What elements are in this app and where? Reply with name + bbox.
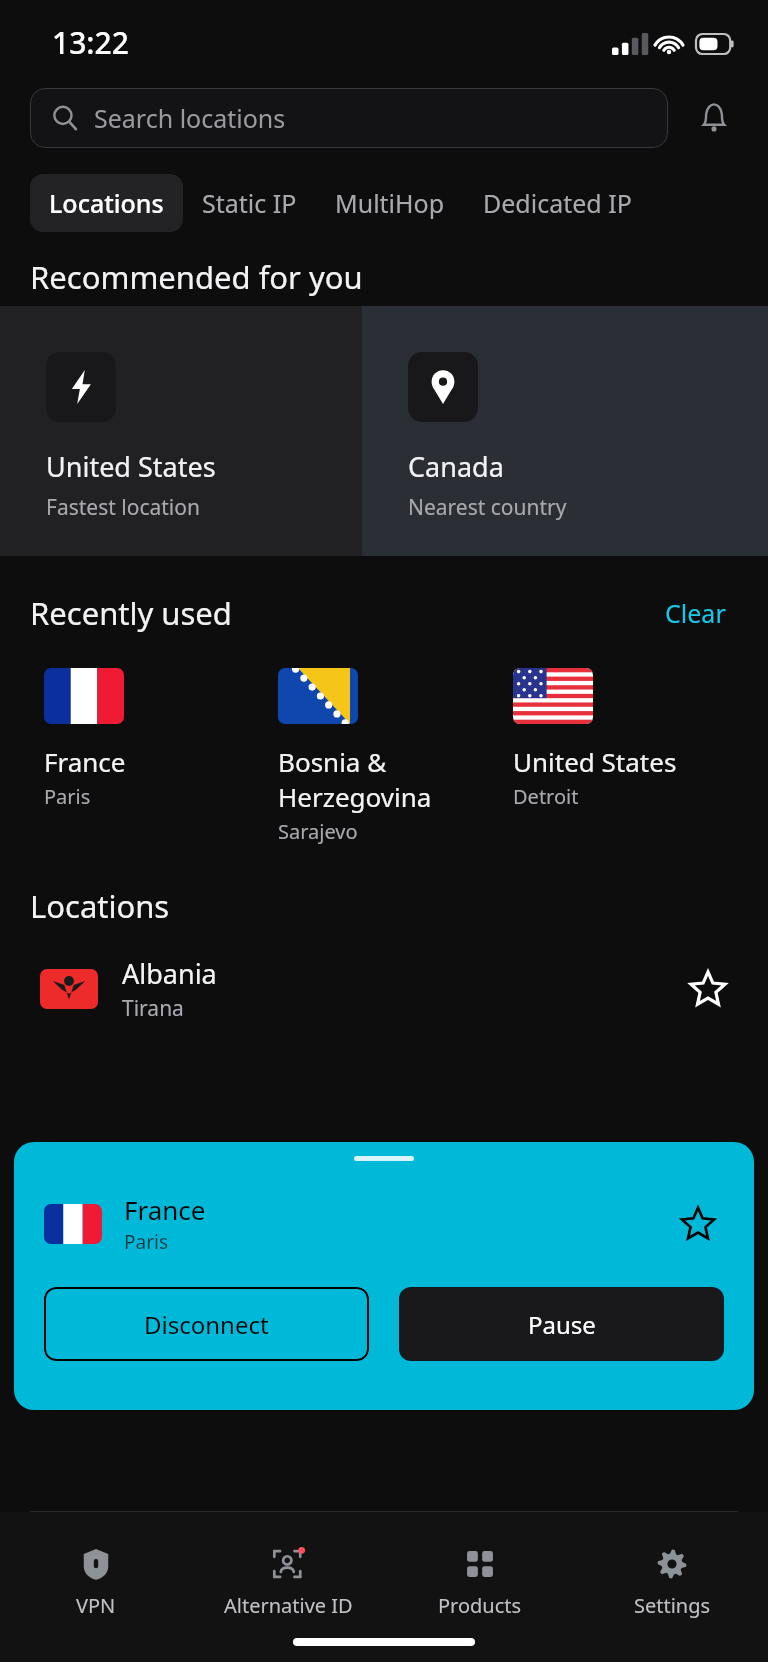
button[interactable]: Favorite (672, 1198, 724, 1250)
staticText: Nearest country (408, 493, 567, 522)
button[interactable]: Clear (657, 588, 734, 638)
button[interactable]: France (14, 1142, 754, 1410)
button[interactable]: United States (0, 306, 362, 556)
staticText: Locations (30, 885, 170, 927)
button[interactable]: Bosnia & Herzegovina (278, 668, 513, 845)
staticText: Static IP (202, 186, 297, 220)
staticText: MultiHop (335, 186, 445, 220)
button[interactable]: Pause (399, 1287, 724, 1361)
staticText: Sarajevo (278, 818, 358, 845)
staticText: Alternative ID (224, 1592, 353, 1619)
staticText: Tirana (122, 994, 184, 1023)
staticText: VPN (76, 1592, 116, 1619)
button[interactable]: Search locations (30, 88, 668, 148)
staticText: Paris (44, 783, 91, 810)
staticText: Locations (49, 186, 164, 220)
staticText: Products (438, 1592, 522, 1619)
staticText: United States (46, 448, 216, 485)
staticText: Disconnect (144, 1308, 269, 1341)
button[interactable]: Dedicated IP (464, 174, 651, 232)
button[interactable]: VPN (0, 1538, 192, 1623)
button[interactable]: United States (513, 668, 748, 810)
staticText: Dedicated IP (483, 186, 632, 220)
button[interactable]: Alternative ID (192, 1538, 384, 1623)
staticText: France (124, 1192, 206, 1227)
button[interactable]: Products (384, 1538, 576, 1623)
staticText: Pause (528, 1308, 596, 1341)
button[interactable]: Static IP (183, 174, 316, 232)
staticText: Clear (665, 596, 726, 630)
button[interactable]: MultiHop (316, 174, 464, 232)
button[interactable]: Albania (0, 955, 768, 1023)
staticText: Paris (124, 1229, 169, 1255)
staticText: Bosnia & Herzegovina (278, 744, 432, 814)
staticText: Detroit (513, 783, 579, 810)
staticText: France (44, 744, 126, 779)
staticText: Fastest location (46, 493, 200, 522)
staticText: Recently used (30, 592, 657, 634)
staticText: United States (513, 744, 677, 779)
button[interactable]: Favorite (684, 965, 732, 1013)
staticText: Canada (408, 448, 504, 485)
button[interactable]: France (44, 668, 278, 810)
button[interactable]: Notifications (688, 92, 740, 144)
button[interactable]: Canada (362, 306, 768, 556)
staticText: Search locations (94, 101, 286, 135)
staticText: 13:22 (52, 22, 129, 63)
staticText: Settings (634, 1592, 711, 1619)
button[interactable]: Locations (30, 174, 183, 232)
button[interactable]: Disconnect (44, 1287, 369, 1361)
staticText: Albania (122, 955, 217, 992)
staticText: Recommended for you (30, 256, 363, 298)
button[interactable]: Settings (576, 1538, 768, 1623)
